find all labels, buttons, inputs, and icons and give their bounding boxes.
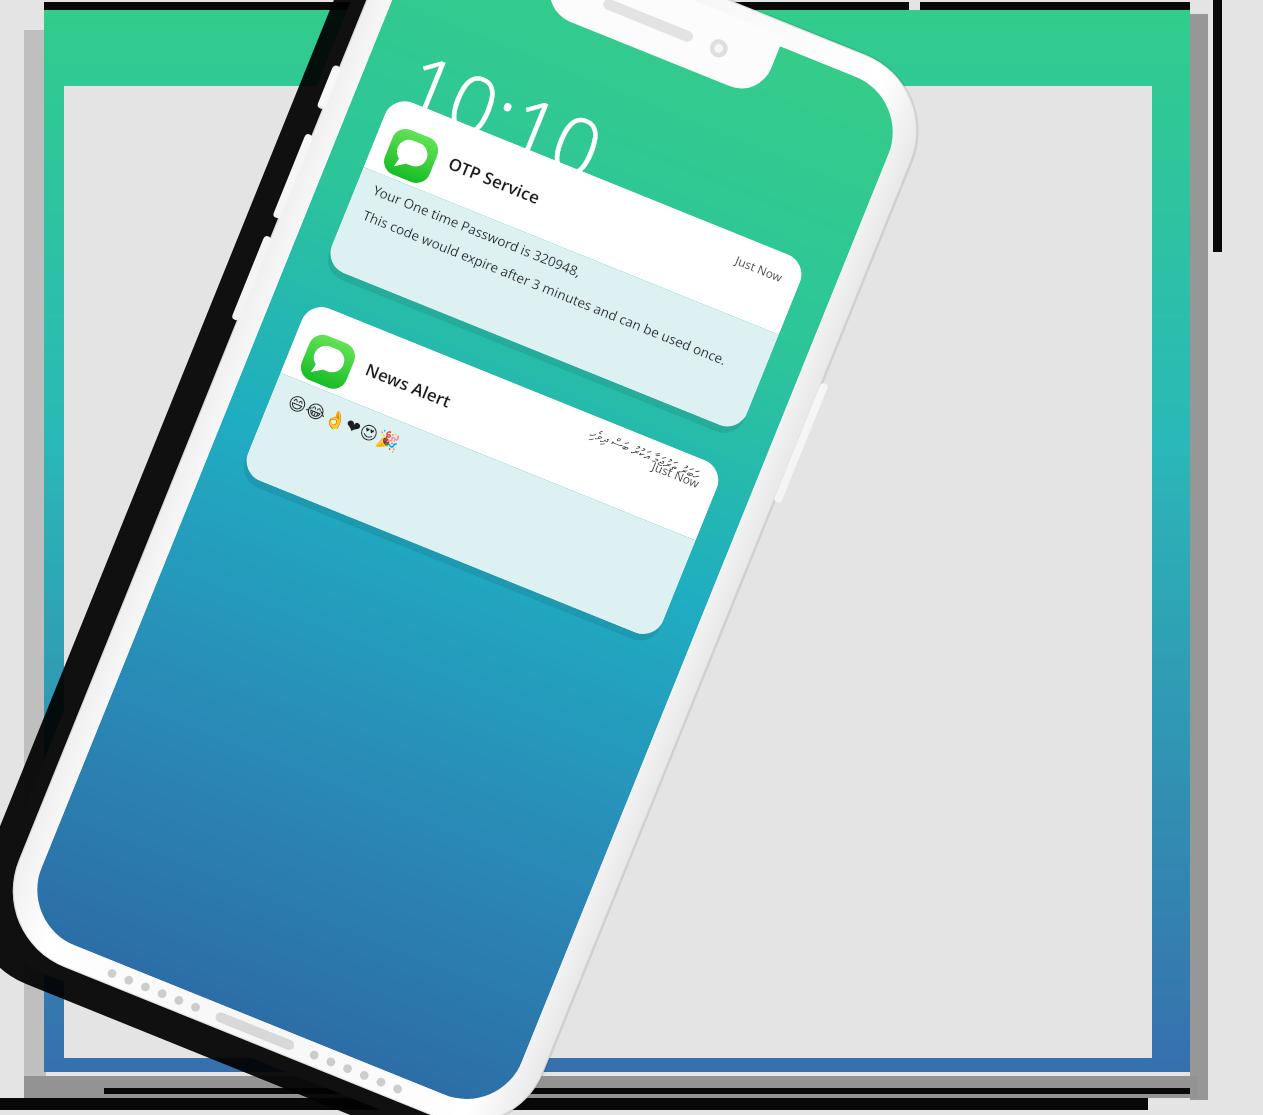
button[interactable]: Lock screen notifications on phone (0, 0, 1263, 1115)
